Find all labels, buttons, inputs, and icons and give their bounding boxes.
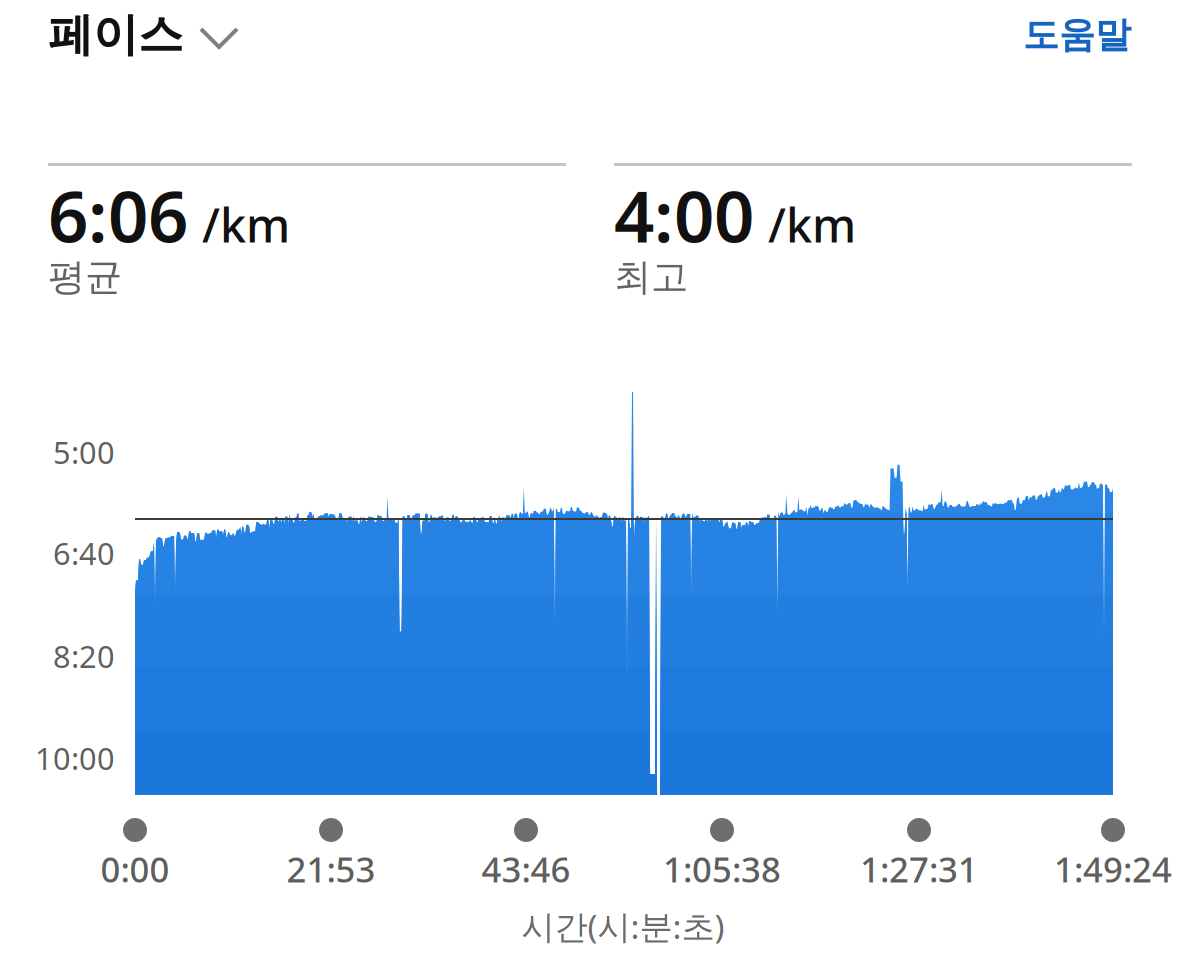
staticText: 0:00 [100,846,169,892]
staticText: 1:49:24 [1054,846,1172,892]
staticText: 43:46 [481,846,570,892]
staticText: 10:00 [35,738,115,778]
staticText: /km [202,193,290,255]
button[interactable]: 페이스 [48,7,298,63]
staticText: /km [768,193,856,255]
staticText: 4:00 [614,168,754,262]
staticText: 6:06 [48,168,188,262]
staticText: 5:00 [53,432,115,472]
staticText: 도움말 [1023,13,1131,57]
button[interactable]: 도움말 [991,9,1131,61]
staticText: 페이스 [48,7,183,63]
staticText: 6:40 [53,533,115,573]
staticText: 시간(시:분:초) [521,904,724,948]
staticText: 최고 [614,254,688,300]
staticText: 1:05:38 [663,846,781,892]
staticText: 평균 [48,254,122,300]
staticText: 1:27:31 [860,846,978,892]
staticText: 8:20 [53,636,115,676]
staticText: 21:53 [286,846,375,892]
